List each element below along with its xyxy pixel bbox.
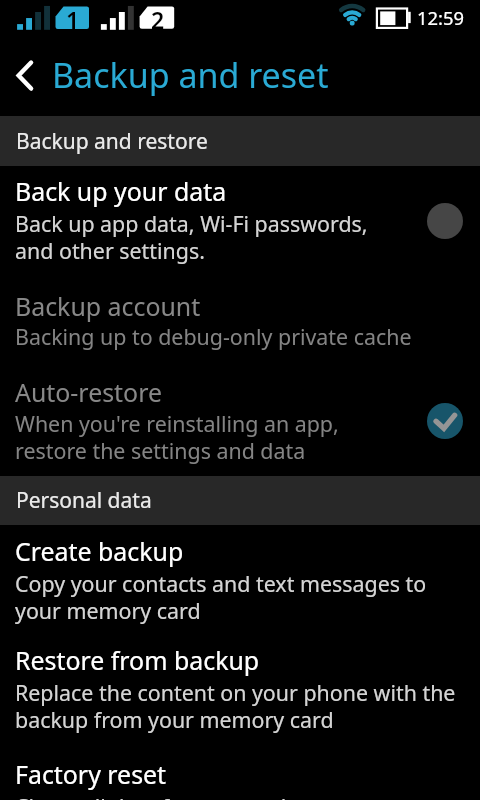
staticText: 1 xyxy=(66,4,80,35)
button[interactable]: Factory reset xyxy=(0,749,480,800)
staticText: Back up app data, Wi-Fi passwords, and o… xyxy=(15,209,368,265)
staticText: Factory reset xyxy=(15,757,167,791)
staticText: Restore from backup xyxy=(15,643,260,677)
button[interactable]: Back xyxy=(0,40,480,116)
staticText: Clears all data from your phone xyxy=(15,792,333,800)
staticText: Backup account xyxy=(15,289,201,323)
staticText: Backing up to debug-only private cache xyxy=(15,322,412,351)
staticText: Create backup xyxy=(15,534,184,568)
staticText: 2 xyxy=(151,4,165,35)
button[interactable]: Restore from backup xyxy=(0,636,480,749)
staticText: Backup and restore xyxy=(16,127,208,156)
staticText: 12:59 xyxy=(417,5,465,30)
staticText: Back up your data xyxy=(15,174,227,208)
button[interactable]: Auto-restore xyxy=(0,362,480,476)
button[interactable]: Create backup xyxy=(0,525,480,636)
button[interactable]: Disabled xyxy=(427,203,463,239)
button[interactable]: Enabled xyxy=(427,403,463,439)
staticText: Personal data xyxy=(16,486,152,515)
staticText: Replace the content on your phone with t… xyxy=(15,678,456,734)
staticText: Copy your contacts and text messages to … xyxy=(15,569,427,625)
staticText: When you're reinstalling an app, restore… xyxy=(15,409,339,465)
button[interactable]: Backup account xyxy=(0,277,480,362)
staticText: Backup and reset xyxy=(52,52,329,98)
button[interactable]: Back xyxy=(4,50,46,104)
staticText: Auto-restore xyxy=(15,375,162,409)
button[interactable]: Back up your data xyxy=(0,166,480,277)
